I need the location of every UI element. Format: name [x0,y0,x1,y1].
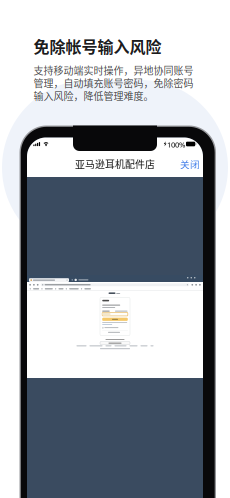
button[interactable]: 关闭 [177,153,203,175]
staticText: 支持移动端实时操作，异地协同账号 [33,63,193,77]
staticText: 输入风险，降低管理难度。 [33,88,153,103]
staticText: 关闭 [180,157,200,171]
staticText: 免除帐号输入风险 [33,34,161,58]
staticText: 管理，自动填充账号密码，免除密码 [33,76,193,90]
staticText: 100% [167,139,185,150]
staticText: 亚马逊耳机配件店 [75,157,155,171]
